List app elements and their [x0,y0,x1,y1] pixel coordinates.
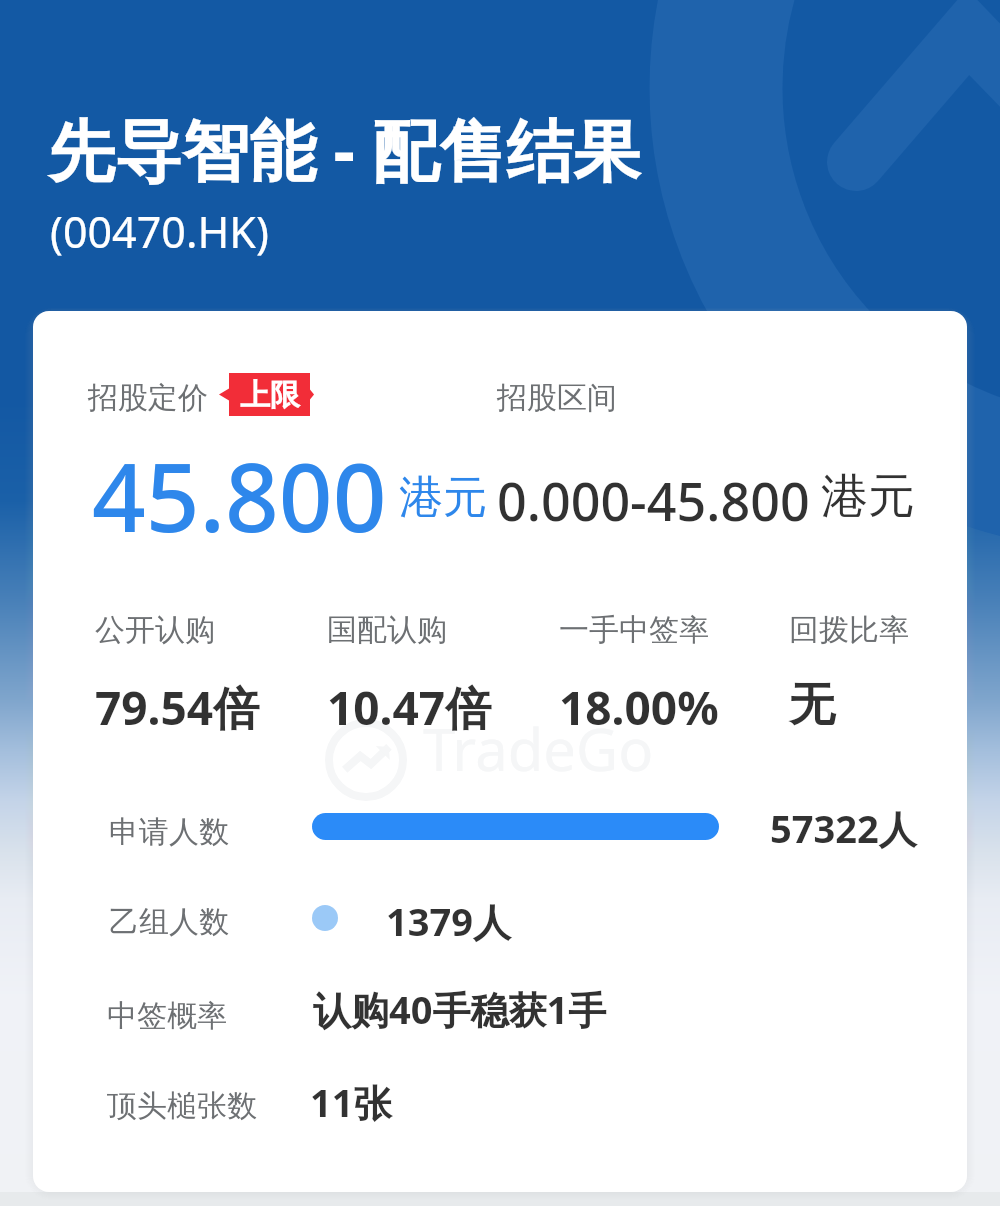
staticText: 港元 [399,470,487,525]
staticText: 45.800 [92,432,387,560]
button[interactable] [327,600,517,710]
button[interactable]: 上限 [219,372,314,417]
staticText: TradeGo [423,709,654,788]
staticText: 一手中签率 [559,611,709,649]
staticText: (00470.HK) [50,202,269,261]
staticText: 认购40手稳获1手 [313,983,607,1035]
other: 乙组人数进度 [312,905,338,931]
staticText: 18.00% [559,676,719,739]
staticText: 乙组人数 [109,903,229,941]
staticText: 回拨比率 [789,611,909,649]
staticText: 0.000-45.800 [497,465,810,536]
staticText: 上限 [240,376,300,414]
staticText: 申请人数 [109,813,229,851]
staticText: 1379人 [386,895,511,947]
button[interactable] [559,600,749,710]
staticText: 先导智能 - 配售结果 [48,103,641,195]
staticText: 国配认购 [327,611,447,649]
other: 申请人数进度 [312,813,719,840]
staticText: 中签概率 [107,997,227,1035]
staticText: 招股区间 [497,379,617,417]
staticText: 79.54倍 [95,676,260,739]
staticText: 57322人 [770,802,917,854]
staticText: 10.47倍 [327,676,492,739]
button[interactable]: 先导智能 - 配售结果 [48,103,641,195]
staticText: 招股定价 [88,379,208,417]
button[interactable]: (00470.HK) [50,202,269,261]
staticText: 公开认购 [95,611,215,649]
staticText: 无 [789,676,835,734]
button[interactable] [95,600,285,710]
button[interactable] [789,600,967,710]
staticText: 顶头槌张数 [107,1087,257,1125]
staticText: 港元 [821,467,915,526]
staticText: 11张 [310,1076,392,1128]
